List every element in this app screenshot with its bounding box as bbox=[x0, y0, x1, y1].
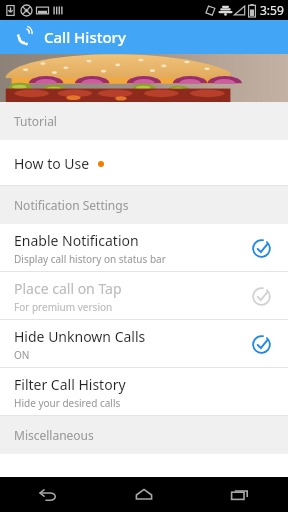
staticText: Enable Notification bbox=[14, 231, 139, 250]
button[interactable]: Place call on Tap toggle bbox=[248, 283, 274, 309]
staticText: Filter Call History bbox=[14, 375, 126, 394]
staticText: Miscellaneous bbox=[14, 427, 94, 443]
staticText: Hide your desired calls bbox=[14, 396, 121, 410]
button[interactable]: Enable Notification toggle bbox=[248, 235, 274, 261]
staticText: Call History bbox=[44, 27, 126, 47]
button[interactable]: Call History bbox=[0, 20, 288, 54]
staticText: Notification Settings bbox=[14, 197, 129, 213]
staticText: Hide Unknown Calls bbox=[14, 327, 146, 346]
button[interactable]: Hide Unknown Calls bbox=[0, 320, 288, 368]
button[interactable]: Filter Call History bbox=[0, 368, 288, 416]
staticText: ON bbox=[14, 348, 30, 362]
button[interactable]: Home bbox=[96, 477, 192, 512]
button[interactable]: Hide Unknown Calls toggle bbox=[248, 331, 274, 357]
staticText: Place call on Tap bbox=[14, 279, 122, 298]
button[interactable]: Back bbox=[0, 477, 96, 512]
staticText: How to Use bbox=[14, 154, 90, 173]
staticText: For premium version bbox=[14, 300, 113, 314]
staticText: Tutorial bbox=[14, 113, 57, 129]
button[interactable]: Enable Notification bbox=[0, 224, 288, 272]
button[interactable]: Recent apps bbox=[192, 477, 288, 512]
staticText: Display call history on status bar bbox=[14, 252, 166, 266]
button[interactable]: How to Use bbox=[0, 140, 288, 186]
button[interactable]: Place call on Tap bbox=[0, 272, 288, 320]
staticText: 3:59 bbox=[260, 2, 284, 18]
other: Call History bbox=[14, 28, 33, 47]
button[interactable]: Advertisement bbox=[0, 54, 288, 102]
